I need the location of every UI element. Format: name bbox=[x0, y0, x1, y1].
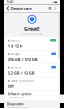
staticText: 5.2 GB / 12 GB bbox=[8, 70, 35, 75]
staticText: Device care bbox=[11, 6, 32, 11]
staticText: Diagnostics bbox=[7, 102, 23, 106]
button[interactable]: More options bbox=[53, 6, 58, 11]
button[interactable]: Storage bbox=[6, 51, 58, 64]
staticText: 216 GB / 512 GB bbox=[8, 57, 38, 62]
staticText: 43% bbox=[52, 66, 55, 68]
staticText: 48% bbox=[52, 53, 55, 55]
staticText: Software update bbox=[8, 92, 32, 96]
button[interactable]: Battery bbox=[6, 37, 58, 50]
button[interactable]: Device protection bbox=[6, 77, 58, 91]
staticText: Great! bbox=[24, 25, 40, 32]
button[interactable]: Software update bbox=[6, 91, 58, 100]
staticText: Your phone is in good condition bbox=[21, 33, 42, 35]
staticText: Storage bbox=[10, 52, 20, 56]
staticText: Device protection bbox=[10, 79, 34, 83]
staticText: 1 d 12 h bbox=[8, 43, 23, 49]
staticText: 9:41 bbox=[7, 0, 14, 4]
staticText: Off bbox=[8, 84, 14, 89]
staticText: Test your phone's hardware bbox=[7, 106, 28, 108]
button[interactable]: Device care bbox=[6, 5, 32, 12]
staticText: Last updated 2 days ago bbox=[8, 97, 25, 98]
button[interactable]: Memory bbox=[6, 64, 58, 77]
staticText: 5G bbox=[52, 1, 54, 3]
staticText: Good bbox=[51, 39, 55, 41]
button[interactable]: Search bbox=[48, 6, 53, 11]
staticText: Battery bbox=[10, 39, 19, 42]
staticText: Memory bbox=[10, 66, 20, 69]
